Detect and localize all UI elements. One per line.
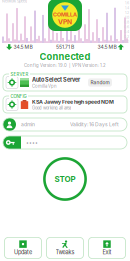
button[interactable]: Random <box>88 78 112 87</box>
staticText: Validity: 16 Days Left <box>70 121 119 127</box>
button[interactable]: STOP <box>43 157 87 201</box>
staticText: VPN <box>58 18 72 26</box>
staticText: Comilla Vpn <box>32 84 57 89</box>
staticText: Config Version: 19.0 | VPN Version: 1.2 <box>24 63 106 68</box>
staticText: CONFIG <box>10 94 26 99</box>
staticText: 0.4 <box>124 30 129 34</box>
button[interactable]: Choose config <box>6 98 18 110</box>
staticText: Connected <box>39 51 90 62</box>
staticText: Tweaks <box>55 249 74 256</box>
staticText: 551.71 B <box>56 44 74 50</box>
staticText: 1.2 <box>125 11 129 15</box>
staticText: SERVER <box>10 72 28 77</box>
staticText: 0.6 <box>124 25 129 29</box>
staticText: Good working all area <box>32 105 71 110</box>
staticText: STOP <box>54 174 75 184</box>
staticText: 1.0 <box>125 15 129 20</box>
staticText: COMILLA <box>53 11 77 18</box>
button[interactable]: •••• <box>3 136 127 149</box>
staticText: 1.4 <box>125 6 129 10</box>
staticText: KSA Jawwy Free high speed NDM <box>32 99 114 105</box>
staticText: 0.2 <box>124 35 129 39</box>
staticText: Exit <box>102 249 111 256</box>
button[interactable]: Update <box>4 237 41 258</box>
button[interactable]: Exit <box>88 237 125 258</box>
staticText: 1.6 <box>125 1 129 5</box>
staticText: 34.5 MB <box>12 44 32 50</box>
staticText: admin <box>21 121 35 127</box>
staticText: Auto Select Server <box>32 76 80 83</box>
staticText: Update <box>14 249 32 256</box>
button[interactable]: Choose server <box>6 76 18 88</box>
button[interactable]: admin <box>3 118 127 131</box>
staticText: 0.0 <box>124 39 129 43</box>
staticText: Network Speed <box>2 0 27 3</box>
staticText: Random <box>90 80 109 85</box>
staticText: •••• <box>26 139 38 145</box>
staticText: 0.8 <box>124 20 129 24</box>
button[interactable]: Tweaks <box>46 237 83 258</box>
staticText: 34.5 MB <box>98 44 118 50</box>
